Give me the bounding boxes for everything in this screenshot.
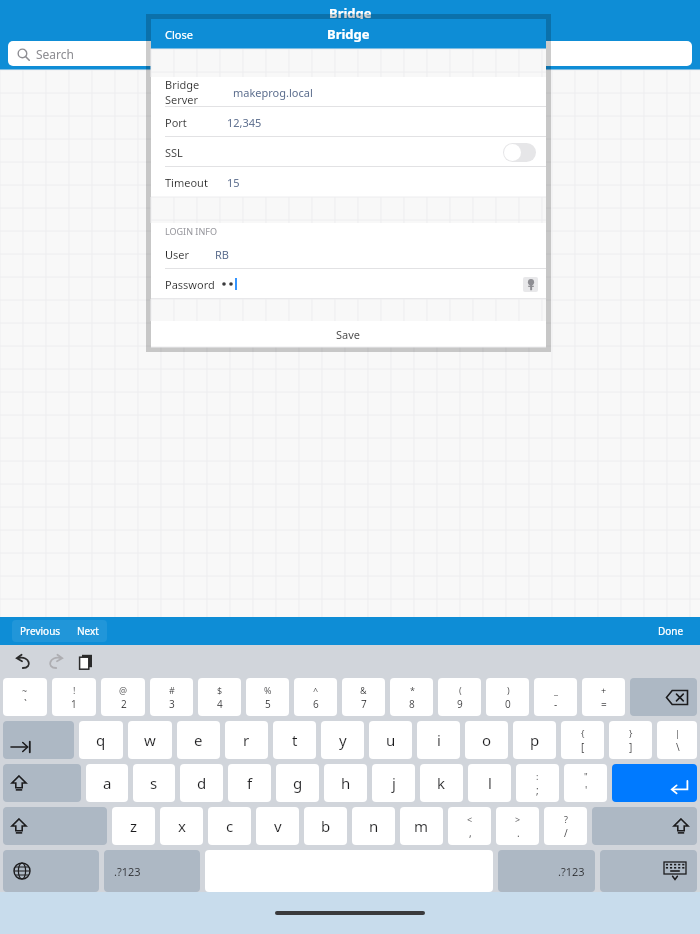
- button[interactable]: SSL toggle: [503, 143, 536, 162]
- staticText: o: [482, 730, 492, 750]
- button[interactable]: Hide keyboard: [600, 850, 697, 892]
- button[interactable]: n: [352, 807, 395, 845]
- button[interactable]: |: [657, 721, 697, 759]
- staticText: ": [584, 770, 588, 782]
- staticText: f: [247, 773, 253, 793]
- button[interactable]: c: [208, 807, 251, 845]
- button[interactable]: v: [256, 807, 299, 845]
- staticText: 9: [457, 697, 463, 711]
- button[interactable]: p: [513, 721, 556, 759]
- button[interactable]: Search: [8, 41, 692, 66]
- button[interactable]: z: [112, 807, 155, 845]
- staticText: Next: [77, 624, 99, 638]
- button[interactable]: Redo: [45, 652, 65, 672]
- staticText: g: [293, 773, 303, 793]
- button[interactable]: #: [150, 678, 193, 716]
- button[interactable]: u: [369, 721, 412, 759]
- button[interactable]: o: [465, 721, 508, 759]
- button[interactable]: *: [390, 678, 433, 716]
- staticText: m: [414, 816, 429, 836]
- staticText: |: [675, 727, 680, 739]
- button[interactable]: Save: [151, 321, 546, 347]
- other: Change language: [3, 850, 99, 892]
- button[interactable]: Change language: [3, 850, 99, 892]
- staticText: *: [410, 684, 415, 696]
- button[interactable]: Previous: [12, 620, 69, 642]
- staticText: \: [676, 740, 680, 754]
- button[interactable]: Close: [161, 24, 197, 45]
- staticText: 7: [361, 697, 367, 711]
- button[interactable]: Bridge Server: [151, 77, 546, 107]
- button[interactable]: Port: [151, 107, 546, 137]
- button[interactable]: Done: [654, 621, 688, 641]
- staticText: `: [24, 697, 27, 711]
- button[interactable]: Return: [612, 764, 697, 802]
- button[interactable]: (: [438, 678, 481, 716]
- button[interactable]: .?123: [104, 850, 200, 892]
- button[interactable]: $: [198, 678, 241, 716]
- button[interactable]: Next: [69, 620, 107, 642]
- staticText: ~: [22, 684, 28, 696]
- staticText: +: [601, 684, 607, 696]
- button[interactable]: t: [273, 721, 316, 759]
- button[interactable]: !: [52, 678, 96, 716]
- button[interactable]: User: [151, 239, 546, 269]
- button[interactable]: g: [276, 764, 319, 802]
- button[interactable]: b: [304, 807, 347, 845]
- button[interactable]: @: [101, 678, 145, 716]
- button[interactable]: Backspace: [630, 678, 697, 716]
- staticText: 6: [313, 697, 319, 711]
- staticText: v: [274, 816, 282, 836]
- button[interactable]: Timeout: [151, 167, 546, 197]
- button[interactable]: Paste: [76, 652, 96, 672]
- button[interactable]: }: [609, 721, 652, 759]
- button[interactable]: +: [582, 678, 625, 716]
- button[interactable]: l: [468, 764, 511, 802]
- button[interactable]: q: [79, 721, 123, 759]
- button[interactable]: Undo: [14, 652, 34, 672]
- button[interactable]: i: [417, 721, 460, 759]
- button[interactable]: ): [486, 678, 529, 716]
- button[interactable]: ^: [294, 678, 337, 716]
- button[interactable]: w: [128, 721, 172, 759]
- staticText: makeprog.local: [233, 85, 313, 100]
- button[interactable]: _: [534, 678, 577, 716]
- button[interactable]: m: [400, 807, 443, 845]
- staticText: x: [178, 816, 186, 836]
- button[interactable]: k: [420, 764, 463, 802]
- button[interactable]: Shift: [592, 807, 697, 845]
- button[interactable]: :: [516, 764, 559, 802]
- staticText: 3: [169, 697, 175, 711]
- button[interactable]: >: [496, 807, 539, 845]
- button[interactable]: .?123: [498, 850, 595, 892]
- button[interactable]: d: [180, 764, 223, 802]
- button[interactable]: Password: [151, 269, 546, 299]
- button[interactable]: {: [561, 721, 604, 759]
- button[interactable]: ~: [3, 678, 47, 716]
- button[interactable]: s: [133, 764, 175, 802]
- button[interactable]: ?: [544, 807, 587, 845]
- staticText: k: [437, 773, 446, 793]
- button[interactable]: Shift: [3, 807, 107, 845]
- button[interactable]: h: [324, 764, 367, 802]
- button[interactable]: SSL: [151, 137, 546, 167]
- button[interactable]: %: [246, 678, 289, 716]
- button[interactable]: ": [564, 764, 607, 802]
- button[interactable]: x: [160, 807, 203, 845]
- staticText: 12,345: [227, 115, 262, 130]
- staticText: 1: [71, 697, 77, 711]
- button[interactable]: a: [86, 764, 128, 802]
- button[interactable]: &: [342, 678, 385, 716]
- button[interactable]: j: [372, 764, 415, 802]
- button[interactable]: f: [228, 764, 271, 802]
- button[interactable]: y: [321, 721, 364, 759]
- button[interactable]: Caps lock: [3, 764, 81, 802]
- button[interactable]: r: [225, 721, 268, 759]
- button[interactable]: <: [448, 807, 491, 845]
- staticText: 0: [505, 697, 511, 711]
- button[interactable]: Tab: [3, 721, 74, 759]
- button[interactable]: Password suggestion: [523, 277, 538, 292]
- button[interactable]: e: [177, 721, 220, 759]
- staticText: SSL: [165, 145, 183, 160]
